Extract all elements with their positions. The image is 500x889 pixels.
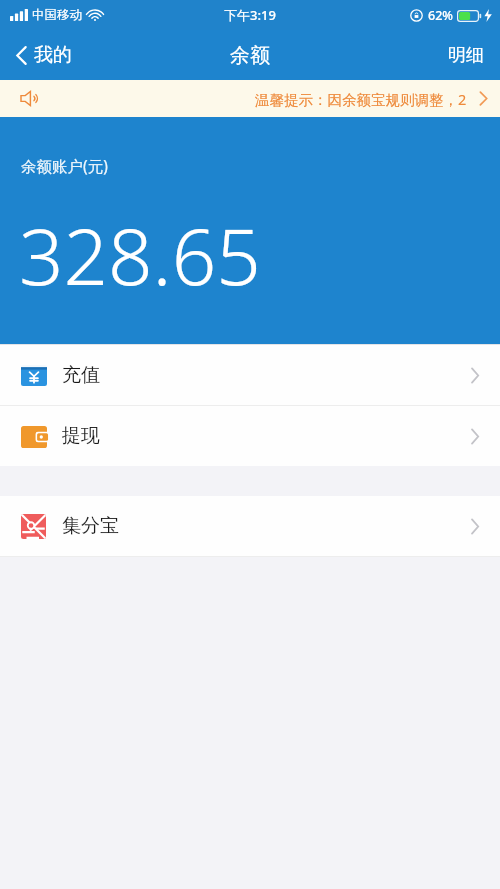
staticText: 提现: [62, 424, 100, 448]
staticText: 62%: [428, 7, 453, 24]
staticText: 余额: [230, 43, 270, 68]
button[interactable]: 提现: [0, 406, 500, 466]
button[interactable]: Announcement: [0, 80, 500, 117]
staticText: 我的: [34, 43, 72, 67]
staticText: 温馨提示：因余额宝规则调整，2: [255, 89, 467, 109]
button[interactable]: 明细: [432, 36, 500, 75]
staticText: 下午3:19: [224, 6, 276, 24]
staticText: 明细: [448, 44, 484, 67]
staticText: 集分宝: [62, 514, 119, 538]
button[interactable]: 我的: [0, 35, 86, 75]
button[interactable]: 集分宝: [0, 496, 500, 556]
staticText: 328.65: [19, 202, 261, 308]
staticText: 充值: [62, 363, 100, 387]
staticText: 余额账户(元): [21, 155, 108, 176]
staticText: 中国移动: [32, 7, 82, 23]
button[interactable]: 充值: [0, 345, 500, 405]
other: Announcement: [20, 90, 40, 107]
